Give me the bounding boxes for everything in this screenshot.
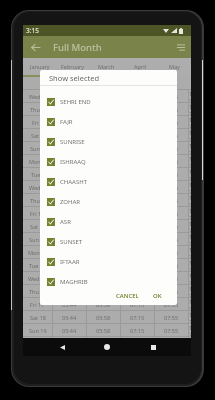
staticText: Thu 2	[30, 106, 45, 113]
staticText: 07:55	[164, 223, 179, 230]
button[interactable]: Fri 17	[23, 298, 191, 310]
button[interactable]: FAJR	[40, 112, 177, 132]
staticText: FAJR	[60, 118, 73, 126]
button[interactable]: MAGHRIB	[40, 272, 177, 292]
staticText: MAGHRIB	[60, 278, 88, 286]
button[interactable]: ASR	[40, 212, 177, 232]
button[interactable]: Wed 15	[23, 272, 191, 284]
button[interactable]: May	[157, 58, 191, 75]
button[interactable]: March	[89, 58, 123, 75]
staticText: 07:15	[130, 327, 145, 334]
staticText: 07:55	[164, 106, 179, 113]
staticText: 07:55	[164, 93, 179, 100]
button[interactable]: Wed 1	[23, 90, 191, 102]
button[interactable]: Home	[100, 340, 114, 354]
button[interactable]: Back	[27, 39, 43, 55]
staticText: 12:35	[189, 103, 191, 115]
staticText: SEHRI END	[60, 98, 91, 106]
button[interactable]: Sat 18	[23, 311, 191, 323]
staticText: 07:55	[164, 288, 179, 295]
button[interactable]: Mon 13	[23, 246, 191, 258]
staticText: 07:55	[164, 210, 179, 217]
staticText: ZOHAR	[60, 198, 81, 206]
button[interactable]: Tue 14	[23, 259, 191, 271]
staticText: 05:44	[62, 314, 77, 321]
staticText: Fri 10	[30, 210, 45, 217]
button[interactable]: Sat 4	[23, 129, 191, 141]
button[interactable]: ISHRAAQ	[40, 152, 177, 172]
button[interactable]: Fri 3	[23, 116, 191, 128]
button[interactable]: ZOHAR	[40, 192, 177, 212]
button[interactable]: Sat 11	[23, 220, 191, 232]
button[interactable]: Thu 2	[23, 103, 191, 115]
button[interactable]: Recents	[146, 340, 160, 354]
button[interactable]: Sun 5	[23, 142, 191, 154]
button[interactable]: Thu 16	[23, 285, 191, 297]
button[interactable]: Mon 6	[23, 155, 191, 167]
staticText: 12:35	[189, 90, 191, 102]
button[interactable]: IFTAAR	[40, 252, 177, 272]
staticText: ASR	[60, 218, 71, 226]
staticText: 07:55	[164, 314, 179, 321]
staticText: 05:44	[62, 119, 77, 126]
button[interactable]: January	[23, 58, 56, 75]
button[interactable]: SUNSET	[40, 232, 177, 252]
staticText: Sun 5	[30, 145, 45, 152]
button[interactable]: Mon 20	[23, 337, 191, 338]
staticText: Thu 9	[30, 197, 45, 204]
staticText: 12:35	[189, 207, 191, 219]
staticText: 12:35	[189, 324, 191, 336]
staticText: 05:44	[62, 158, 77, 165]
staticText: 07:55	[164, 145, 179, 152]
button[interactable]: OK	[149, 290, 166, 301]
button[interactable]: Sun 12	[23, 233, 191, 245]
staticText: 12:35	[189, 298, 191, 310]
button[interactable]: Fri 10	[23, 207, 191, 219]
staticText: March	[98, 63, 115, 70]
button[interactable]: February	[56, 58, 89, 75]
staticText: IFTAAR	[60, 258, 80, 266]
button[interactable]: Sun 19	[23, 324, 191, 336]
staticText: 07:55	[164, 262, 179, 269]
button[interactable]: Tue 7	[23, 168, 191, 180]
staticText: Sat 18	[30, 314, 46, 321]
staticText: 12:35	[189, 233, 191, 245]
staticText: 12:35	[189, 142, 191, 154]
staticText: 05:58	[96, 314, 111, 321]
button[interactable]: CANCEL	[112, 290, 143, 301]
staticText: 12:35	[189, 259, 191, 271]
button[interactable]: Back	[55, 340, 69, 354]
staticText: 05:44	[62, 262, 77, 269]
button[interactable]: SEHRI END	[40, 92, 177, 112]
staticText: 07:15	[130, 288, 145, 295]
button[interactable]: CHAASHT	[40, 172, 177, 192]
button[interactable]: April	[123, 58, 157, 75]
staticText: May	[169, 63, 180, 70]
button[interactable]: Thu 9	[23, 194, 191, 206]
button[interactable]: SUNRISE	[40, 132, 177, 152]
staticText: 07:55	[164, 236, 179, 243]
staticText: SUNSET	[60, 238, 83, 246]
button[interactable]: Wed 8	[23, 181, 191, 193]
button[interactable]: More options	[173, 39, 189, 55]
